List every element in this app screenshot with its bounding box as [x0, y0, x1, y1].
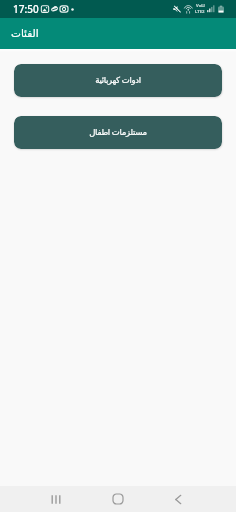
button[interactable]: ادوات كهربائية	[14, 64, 222, 97]
button[interactable]: Back	[162, 486, 195, 512]
staticText: ادوات كهربائية	[95, 74, 141, 86]
staticText: الفئات	[11, 27, 39, 39]
button[interactable]: Home	[101, 486, 134, 512]
button[interactable]: مستلزمات اطفال	[14, 116, 222, 149]
button[interactable]: Recents	[39, 486, 72, 512]
staticText: VoLl	[196, 3, 205, 9]
staticText: LTE2	[195, 9, 205, 15]
staticText: 17:50	[13, 2, 39, 16]
staticText: مستلزمات اطفال	[89, 126, 147, 138]
